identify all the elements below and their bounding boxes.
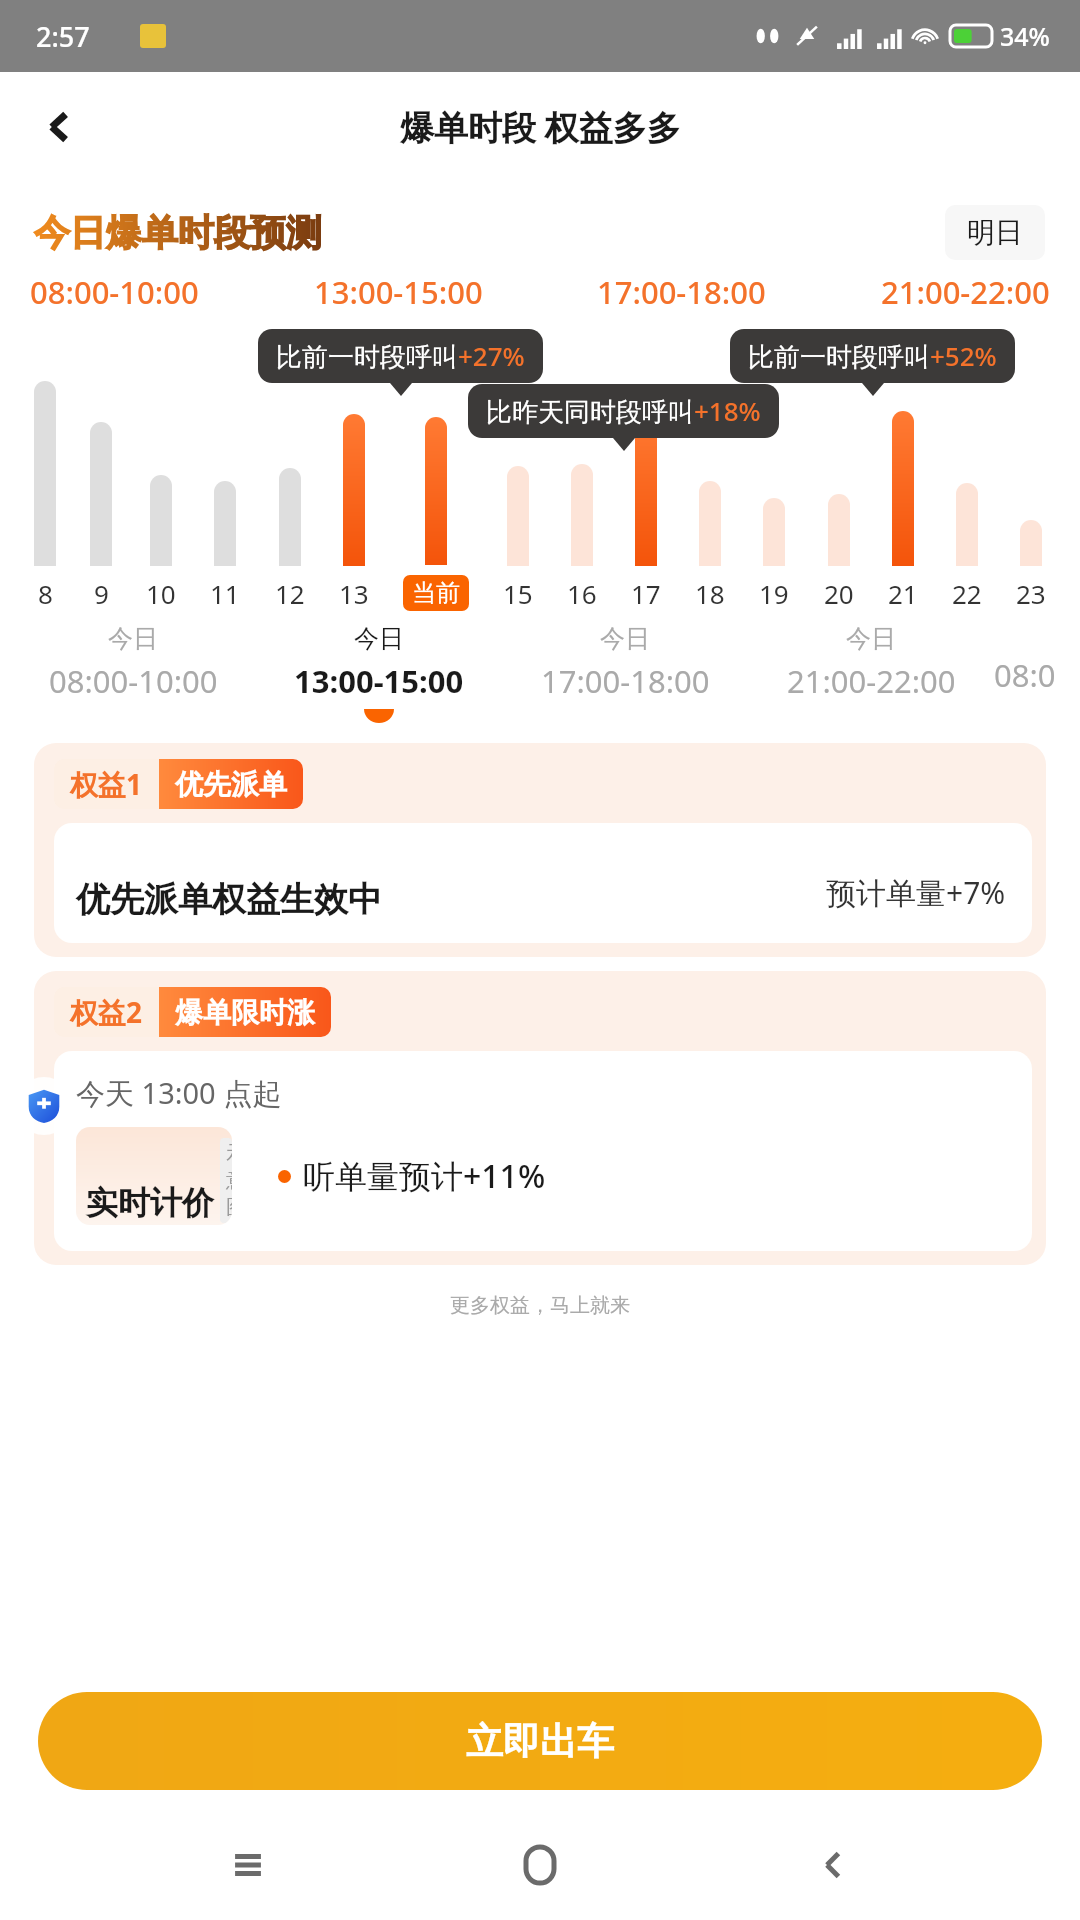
staticText: 今日 xyxy=(600,623,650,654)
staticText: 17:00-18:00 xyxy=(541,660,710,702)
staticText: 今天 13:00 点起 xyxy=(76,1073,282,1113)
button[interactable]: Recent apps xyxy=(203,1820,293,1910)
staticText: 20 xyxy=(824,576,854,611)
staticText: 12 xyxy=(275,576,305,611)
staticText: 8 xyxy=(38,576,53,611)
staticText: 比前一时段呼叫+52% xyxy=(748,338,997,374)
button[interactable]: 今日 xyxy=(748,623,994,709)
staticText: 爆单限时涨 xyxy=(175,995,315,1030)
staticText: 08:0 xyxy=(994,654,1056,696)
staticText: 17 xyxy=(631,576,661,611)
staticText: 优先派单权益生效中 xyxy=(76,878,382,921)
button[interactable]: 今日 xyxy=(10,623,256,709)
button[interactable]: 权益2 xyxy=(34,971,1046,1265)
staticText: 今日 xyxy=(846,623,896,654)
staticText: 今日 xyxy=(354,623,404,654)
button[interactable]: 立即出车 xyxy=(38,1692,1042,1790)
staticText: 34% xyxy=(1000,19,1050,53)
staticText: 10 xyxy=(146,576,176,611)
staticText: 明日 xyxy=(967,215,1023,250)
staticText: 08:00-10:00 xyxy=(30,271,199,313)
button[interactable]: 今日 xyxy=(256,623,502,723)
staticText: 爆单时段 权益多多 xyxy=(400,104,681,150)
staticText: 23 xyxy=(1016,576,1046,611)
staticText: 08:00-10:00 xyxy=(49,660,218,702)
staticText: 16 xyxy=(567,576,597,611)
staticText: 13:00-15:00 xyxy=(294,660,464,702)
staticText: 18 xyxy=(695,576,725,611)
staticText: 21:00-22:00 xyxy=(881,271,1050,313)
button[interactable]: Home xyxy=(495,1820,585,1910)
staticText: 今日爆单时段预测 xyxy=(34,210,322,255)
staticText: 21 xyxy=(888,576,918,611)
staticText: 当前 xyxy=(412,578,460,608)
staticText: 比前一时段呼叫+27% xyxy=(276,338,525,374)
staticText: 立即出车 xyxy=(466,1718,614,1765)
staticText: 11 xyxy=(210,576,240,611)
button[interactable]: Security shield xyxy=(15,1077,73,1135)
button[interactable]: 权益1 xyxy=(34,743,1046,957)
button[interactable]: 明日 xyxy=(945,205,1045,260)
staticText: 17:00-18:00 xyxy=(597,271,766,313)
staticText: 13:00-15:00 xyxy=(314,271,483,313)
staticText: 比昨天同时段呼叫+18% xyxy=(486,393,761,429)
staticText: 9 xyxy=(94,576,109,611)
staticText: 22 xyxy=(952,576,982,611)
button[interactable]: 今日 xyxy=(502,623,748,709)
staticText: 优先派单 xyxy=(175,767,287,802)
staticText: 预计单量+7% xyxy=(826,872,1006,913)
staticText: 实时计价 xyxy=(86,1183,214,1223)
staticText: 19 xyxy=(759,576,789,611)
button[interactable]: Back xyxy=(788,1820,878,1910)
staticText: 13 xyxy=(339,576,369,611)
staticText: 听单量预计+11% xyxy=(303,1154,546,1198)
staticText: 15 xyxy=(503,576,533,611)
staticText: 2:57 xyxy=(36,18,90,55)
staticText: 权益1 xyxy=(70,765,143,803)
staticText: 权益2 xyxy=(70,993,143,1031)
staticText: 今日 xyxy=(108,623,158,654)
button[interactable]: Back xyxy=(28,96,90,158)
staticText: 更多权益，马上就来 xyxy=(0,1293,1080,1318)
staticText: 21:00-22:00 xyxy=(787,660,956,702)
